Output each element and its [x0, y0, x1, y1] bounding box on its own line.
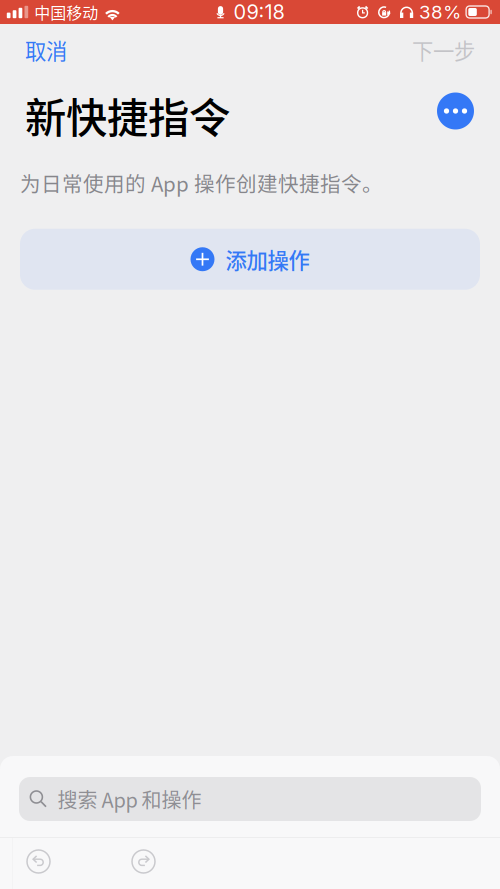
button[interactable]: 搜索 App 和操作: [19, 777, 481, 821]
button[interactable]: 取消: [20, 28, 72, 72]
staticText: 添加操作: [225, 244, 309, 275]
button[interactable]: 添加操作: [20, 229, 480, 290]
staticText: 09:18: [233, 0, 284, 24]
button[interactable]: Redo: [77, 838, 210, 889]
staticText: 新快捷指令: [25, 85, 230, 145]
staticText: 为日常使用的 App 操作创建快捷指令。: [20, 168, 383, 198]
staticText: 取消: [25, 35, 67, 65]
button[interactable]: 下一步: [407, 28, 480, 72]
button[interactable]: More options: [437, 92, 474, 129]
button[interactable]: Undo: [0, 838, 77, 889]
staticText: 38%: [419, 1, 461, 23]
staticText: 搜索 App 和操作: [57, 784, 201, 813]
staticText: 下一步: [412, 35, 475, 65]
staticText: 中国移动: [34, 0, 98, 24]
